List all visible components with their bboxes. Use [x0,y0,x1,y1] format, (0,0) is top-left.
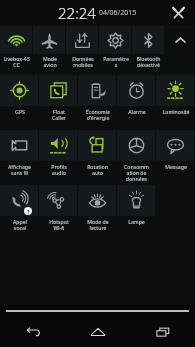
button[interactable]: wifi [0,26,32,54]
button[interactable]: Message [156,130,194,161]
staticText: Luminosité [162,108,190,115]
button[interactable]: gear [99,26,131,54]
staticText: Mode avion [43,55,57,68]
button[interactable]: Affichage sans fil [0,130,38,161]
staticText: Alarme [128,108,146,115]
staticText: Paramètre s [103,55,129,68]
button[interactable]: Appel vocal [0,185,38,216]
button[interactable]: Économie d'énergie [78,75,116,106]
button[interactable]: data2 [66,26,98,54]
button[interactable]: Luminosité [156,75,194,106]
staticText: Float Caller [52,108,66,121]
button[interactable]: Hotspot Wi-fi [39,185,77,216]
staticText: Mode de lecture [87,218,109,231]
button[interactable]: Float Caller [39,75,77,106]
button[interactable]: Recents [130,317,195,347]
button[interactable]: Back [0,317,65,347]
staticText: Consomm ation de données [124,163,149,182]
staticText: ? [27,208,30,215]
button[interactable]: plane [33,26,65,54]
button[interactable]: GPS [0,75,38,106]
button[interactable]: Home [65,317,130,347]
staticText: Message [165,163,187,170]
button[interactable]: Consomm ation de données [117,130,155,161]
staticText: Rotation auto [87,163,108,176]
button[interactable]: Settings [168,3,188,23]
staticText: Profils audio [51,163,67,176]
button[interactable]: bt [132,26,164,54]
button[interactable]: Lampe [117,185,155,216]
staticText: Lampe [128,218,145,225]
staticText: GPS [15,108,25,115]
button[interactable]: Rotation auto [78,130,116,161]
staticText: Affichage sans fil [8,163,31,176]
staticText: Livebox-43 CC [3,55,30,68]
staticText: Appel vocal [13,218,27,231]
staticText: 22:24 [58,3,96,23]
button[interactable]: Collapse [165,26,195,54]
button[interactable]: Mode de lecture [78,185,116,216]
staticText: Bluetooth désactivé [136,55,161,68]
staticText: Hotspot Wi-fi [49,218,69,231]
staticText: 04/06/2015 [99,8,137,18]
staticText: Économie d'énergie [86,108,110,121]
button[interactable]: Alarme [117,75,155,106]
button[interactable]: Profils audio [39,130,77,161]
staticText: Données mobiles [72,55,94,68]
